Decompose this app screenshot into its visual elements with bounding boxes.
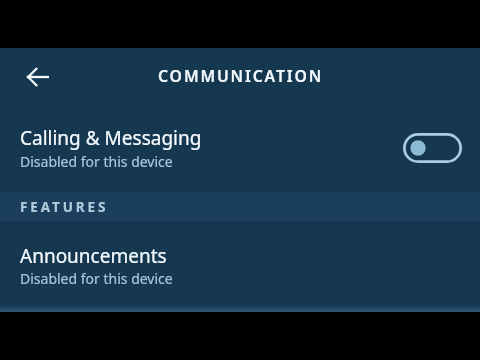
staticText: Announcements xyxy=(20,243,167,269)
staticText: Disabled for this device xyxy=(20,269,173,288)
staticText: Disabled for this device xyxy=(20,152,173,171)
staticText: FEATURES xyxy=(20,198,109,216)
staticText: Calling & Messaging xyxy=(20,125,202,151)
button[interactable]: Navigate up xyxy=(16,55,60,99)
staticText: COMMUNICATION xyxy=(158,65,324,87)
button[interactable]: Announcements xyxy=(0,221,480,305)
button[interactable]: Calling & Messaging switch, off xyxy=(403,133,462,163)
button[interactable]: Calling & Messaging xyxy=(0,96,480,192)
